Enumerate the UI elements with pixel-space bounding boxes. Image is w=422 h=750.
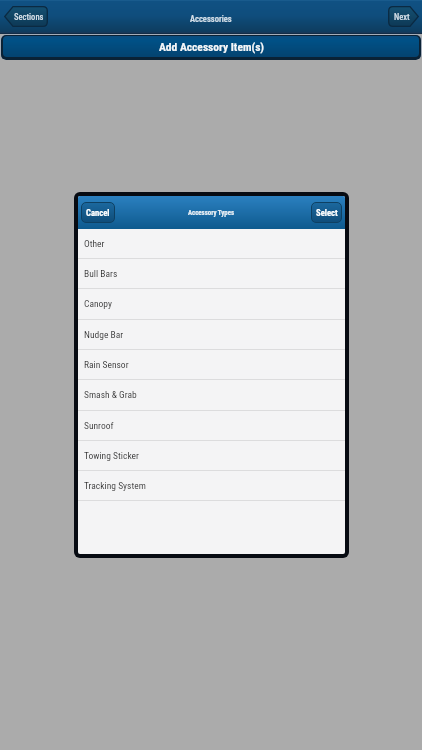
button[interactable]: Rain Sensor [78,350,345,380]
staticText: Sections [14,12,44,22]
button[interactable]: Cancel [81,202,115,223]
staticText: Smash & Grab [84,389,137,400]
button[interactable]: Sections [4,6,48,27]
button[interactable]: Select [311,202,342,223]
staticText: Accessory Types [188,209,235,217]
staticText: Towing Sticker [84,450,139,461]
button[interactable]: Towing Sticker [78,441,345,471]
staticText: Other [84,238,105,249]
staticText: Canopy [84,298,112,309]
staticText: Rain Sensor [84,359,129,370]
button[interactable]: Next [388,6,419,27]
staticText: Cancel [86,208,110,218]
staticText: Accessories [190,14,232,24]
button[interactable]: Nudge Bar [78,320,345,350]
button[interactable]: Canopy [78,289,345,320]
staticText: Add Accessory Item(s) [159,40,265,53]
staticText: Next [394,12,410,22]
staticText: Select [316,208,338,218]
button[interactable]: Other [78,229,345,259]
staticText: Tracking System [84,480,146,491]
staticText: Sunroof [84,420,114,431]
button[interactable]: Smash & Grab [78,380,345,411]
staticText: Nudge Bar [84,329,124,340]
staticText: Bull Bars [84,268,118,279]
button[interactable]: Add Accessory Item(s) [3,36,419,57]
button[interactable]: Sunroof [78,411,345,441]
button[interactable]: Bull Bars [78,259,345,289]
button[interactable]: Tracking System [78,471,345,501]
